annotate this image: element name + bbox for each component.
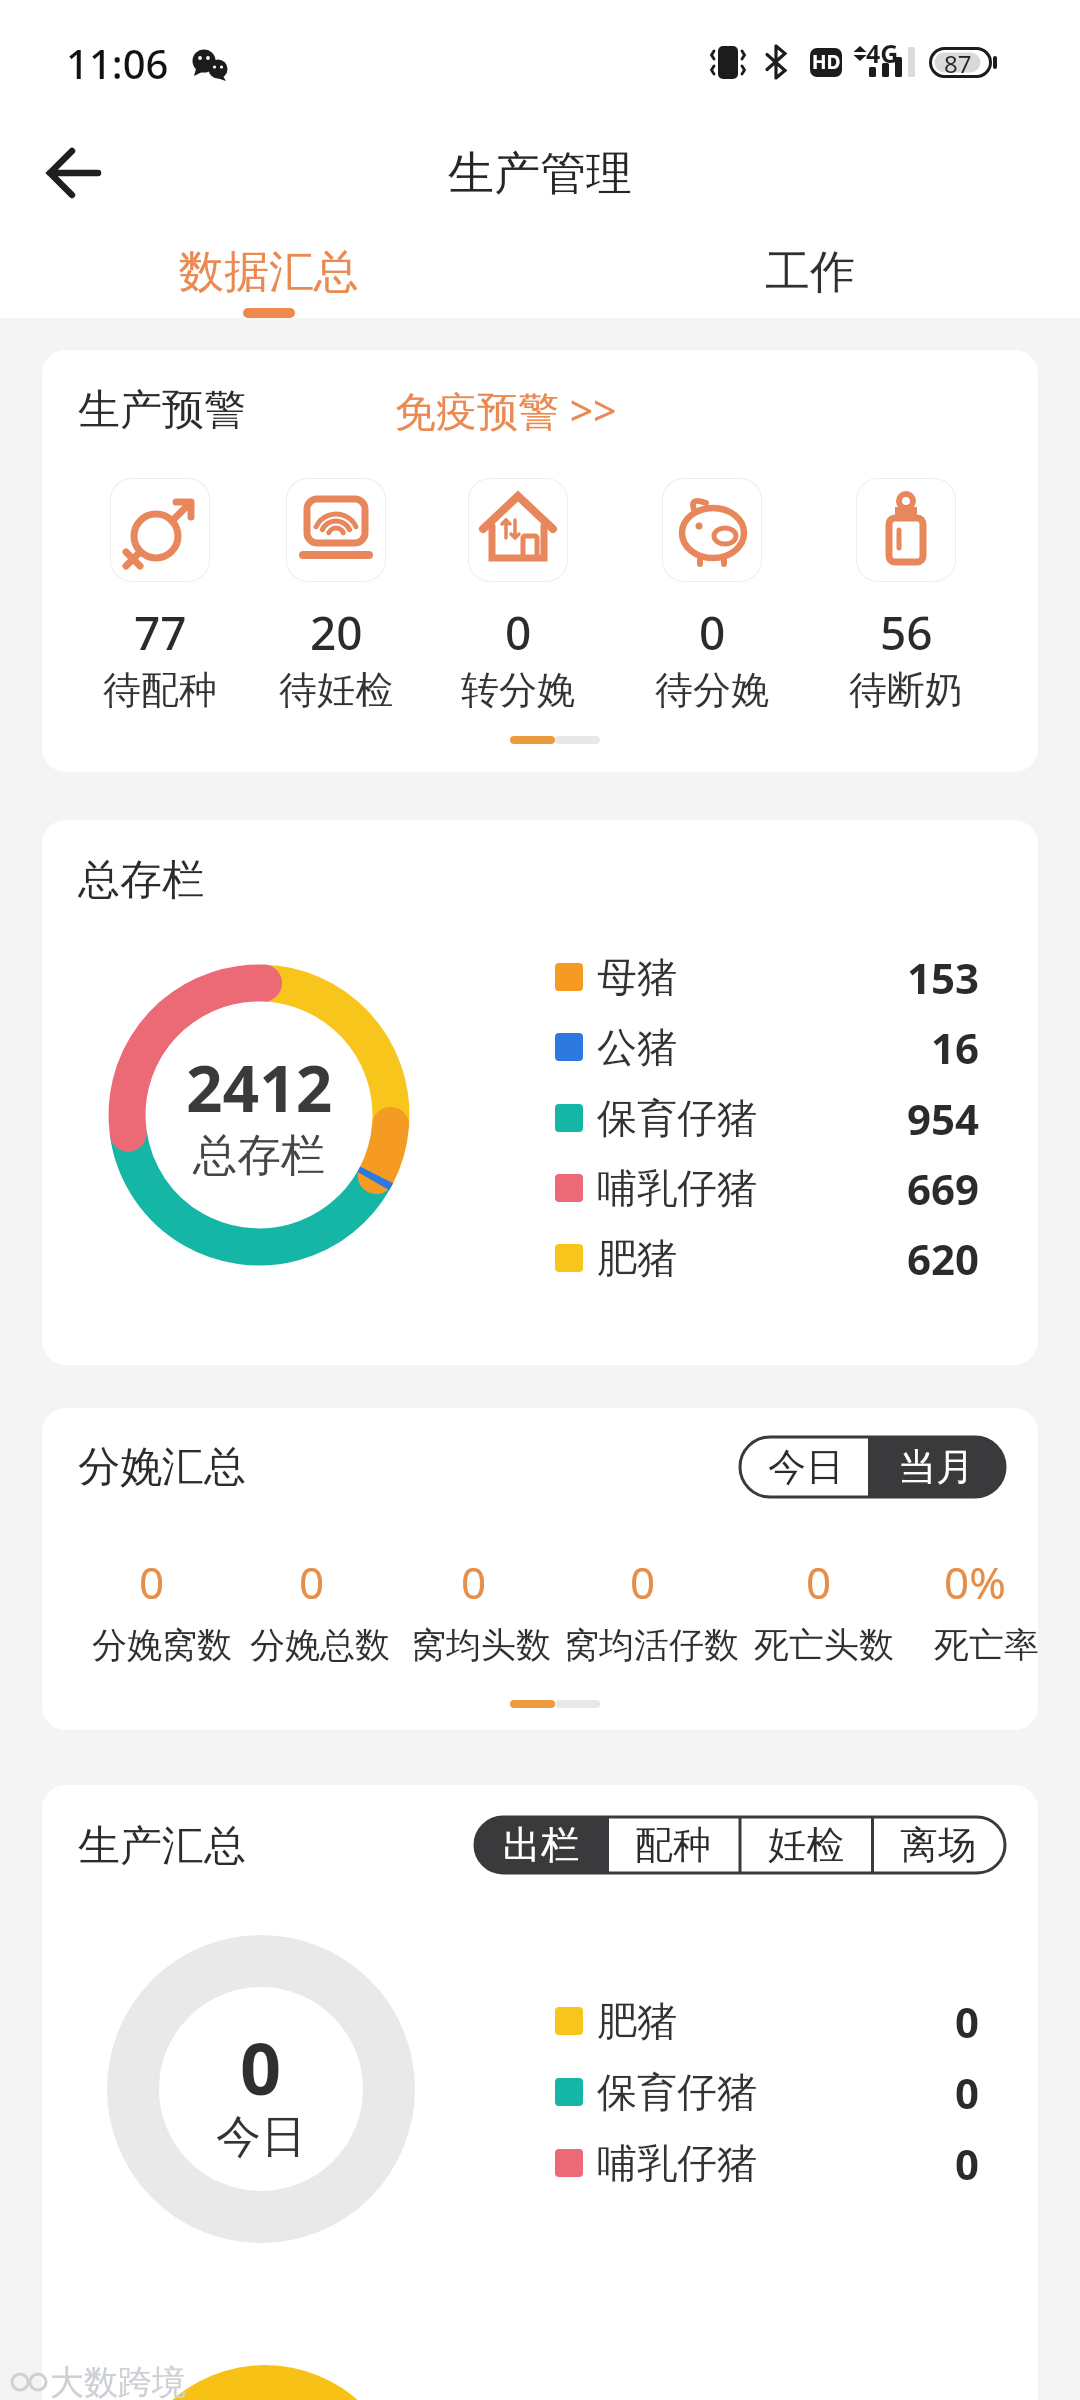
staticText: 77 (134, 601, 187, 664)
staticText: 窝均活仔数 (564, 1623, 739, 1667)
staticText: 今日 (216, 2109, 306, 2166)
button[interactable] (740, 1817, 872, 1873)
staticText: 转分娩 (461, 666, 575, 714)
button[interactable] (856, 478, 956, 582)
staticText: 哺乳仔猪 (597, 1163, 757, 1213)
staticText: 16 (931, 1019, 980, 1076)
staticText: 今日 (768, 1443, 844, 1491)
button[interactable] (872, 1817, 1005, 1873)
staticText: 0 (955, 2135, 980, 2192)
staticText: 0% (944, 1552, 1006, 1612)
staticText: 0 (806, 1552, 832, 1612)
button[interactable] (468, 478, 568, 582)
button[interactable] (608, 1817, 740, 1873)
staticText: 0 (955, 1993, 980, 2050)
staticText: 0 (461, 1552, 487, 1612)
staticText: HD (812, 49, 841, 75)
staticText: 死亡头数 (754, 1623, 894, 1667)
staticText: 87 (944, 47, 972, 80)
staticText: 肥猪 (597, 1996, 677, 2046)
button[interactable] (110, 478, 210, 582)
staticText: 4G (866, 36, 899, 70)
button[interactable] (700, 230, 920, 318)
staticText: 生产汇总 (78, 1820, 246, 1873)
staticText: 0 (699, 601, 726, 664)
button[interactable] (475, 1817, 608, 1873)
button[interactable] (868, 1437, 1005, 1497)
staticText: 56 (880, 601, 933, 664)
staticText: 妊检 (768, 1821, 844, 1869)
staticText: 生产预警 (78, 384, 246, 437)
staticText: 工作 (765, 244, 855, 301)
staticText: 总存栏 (78, 854, 204, 907)
staticText: 母猪 (597, 952, 677, 1002)
staticText: 620 (907, 1230, 980, 1287)
staticText: 窝均头数 (411, 1623, 551, 1667)
staticText: 肥猪 (597, 1233, 677, 1283)
button[interactable] (662, 478, 762, 582)
staticText: 大数跨境 (50, 2361, 186, 2400)
staticText: 20 (310, 601, 363, 664)
staticText: 生产管理 (448, 145, 632, 203)
staticText: 0 (505, 601, 532, 664)
staticText: 669 (907, 1160, 980, 1217)
staticText: 数据汇总 (179, 244, 359, 301)
button[interactable] (150, 230, 390, 318)
staticText: 0 (240, 2018, 282, 2108)
staticText: 保育仔猪 (597, 1093, 757, 1143)
staticText: 待配种 (103, 666, 217, 714)
staticText: 离场 (900, 1821, 976, 1869)
button[interactable] (740, 1437, 870, 1497)
staticText: 保育仔猪 (597, 2067, 757, 2117)
staticText: 哺乳仔猪 (597, 2138, 757, 2188)
staticText: 分娩总数 (250, 1623, 390, 1667)
button[interactable] (390, 375, 605, 445)
staticText: 0 (955, 2064, 980, 2121)
staticText: 153 (907, 949, 980, 1006)
staticText: 分娩汇总 (78, 1441, 246, 1494)
staticText: 2412 (186, 1044, 333, 1131)
staticText: 0 (630, 1552, 656, 1612)
staticText: 待断奶 (849, 666, 963, 714)
staticText: 0 (299, 1552, 325, 1612)
staticText: 11:06 (66, 36, 169, 90)
button[interactable] (286, 478, 386, 582)
staticText: 待分娩 (655, 666, 769, 714)
staticText: 待妊检 (279, 666, 393, 714)
staticText: 954 (907, 1090, 980, 1147)
staticText: 总存栏 (193, 1128, 325, 1183)
staticText: 分娩窝数 (92, 1623, 232, 1667)
staticText: 当月 (898, 1443, 974, 1491)
staticText: 出栏 (503, 1821, 579, 1869)
button[interactable] (30, 140, 120, 210)
staticText: 0 (139, 1552, 165, 1612)
staticText: 公猪 (597, 1022, 677, 1072)
staticText: 死亡率 (934, 1623, 1039, 1667)
staticText: 免疫预警 >> (395, 382, 617, 438)
staticText: 配种 (635, 1821, 711, 1869)
